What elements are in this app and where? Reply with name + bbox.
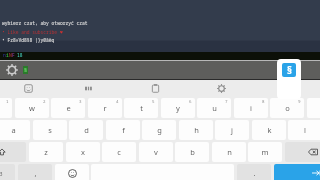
staticText: c bbox=[117, 147, 121, 157]
staticText: . bbox=[253, 168, 256, 178]
button[interactable]: y bbox=[161, 98, 195, 118]
button[interactable]: Stickers bbox=[0, 80, 57, 96]
staticText: w bbox=[29, 103, 35, 113]
button[interactable]: a bbox=[0, 120, 30, 140]
button[interactable]: r bbox=[88, 98, 122, 118]
button[interactable]: c bbox=[102, 142, 136, 162]
staticText: e bbox=[66, 103, 71, 113]
button[interactable]: x bbox=[66, 142, 100, 162]
button[interactable]: h bbox=[179, 120, 213, 140]
staticText: y bbox=[176, 103, 180, 113]
staticText: x bbox=[81, 147, 85, 157]
button[interactable]: t bbox=[124, 98, 158, 118]
staticText: d bbox=[84, 125, 89, 135]
staticText: 18 bbox=[17, 52, 23, 58]
staticText: N bbox=[9, 52, 12, 58]
button[interactable]: v bbox=[139, 142, 173, 162]
button[interactable]: Chat settings bbox=[0, 60, 320, 80]
button[interactable]: w bbox=[15, 98, 49, 118]
staticText: s bbox=[48, 125, 52, 135]
staticText: g bbox=[157, 125, 162, 135]
staticText: u bbox=[212, 103, 217, 113]
staticText: • Like and subscribe ♥ bbox=[2, 29, 63, 35]
staticText: ?123 bbox=[0, 170, 3, 177]
button[interactable]: o bbox=[270, 98, 304, 118]
staticText: 9 bbox=[298, 99, 301, 105]
button[interactable]: s bbox=[33, 120, 67, 140]
button[interactable]: Enter bbox=[274, 164, 320, 180]
button[interactable]: . bbox=[237, 164, 271, 180]
staticText: l bbox=[304, 125, 306, 135]
button[interactable]: b bbox=[175, 142, 209, 162]
staticText: b bbox=[190, 147, 195, 157]
button[interactable]: Chat settings bbox=[6, 64, 18, 76]
staticText: n bbox=[227, 147, 232, 157]
staticText: F bbox=[12, 52, 15, 58]
staticText: v bbox=[154, 147, 158, 157]
staticText: 5 bbox=[152, 99, 155, 105]
button[interactable]: j bbox=[215, 120, 249, 140]
staticText: § bbox=[287, 63, 292, 77]
button[interactable]: Emoji bbox=[55, 164, 89, 180]
staticText: 6 bbox=[189, 99, 192, 105]
button[interactable]: l bbox=[288, 120, 320, 140]
button[interactable]: m bbox=[248, 142, 282, 162]
staticText: 4 bbox=[116, 99, 119, 105]
staticText: h bbox=[194, 125, 199, 135]
staticText: m bbox=[261, 147, 269, 157]
staticText: • Fz8»Vd8§8 |}y0âèq bbox=[2, 37, 55, 43]
button[interactable]: , bbox=[18, 164, 52, 180]
button[interactable]: q bbox=[0, 98, 12, 118]
staticText: t bbox=[140, 103, 143, 113]
button[interactable]: Clipboard bbox=[122, 80, 188, 96]
staticText: j bbox=[231, 125, 233, 135]
button[interactable]: Symbols bbox=[0, 164, 15, 180]
button[interactable]: e bbox=[51, 98, 85, 118]
staticText: wybierz czat, aby otworzyć czat bbox=[2, 20, 88, 26]
staticText: 1 bbox=[6, 99, 9, 105]
button[interactable]: z bbox=[29, 142, 63, 162]
staticText: i bbox=[6, 52, 9, 58]
staticText: i bbox=[250, 103, 252, 113]
staticText: a bbox=[11, 125, 16, 135]
staticText: 7 bbox=[225, 99, 228, 105]
button[interactable]: Themes bbox=[254, 80, 320, 96]
button[interactable]: Backspace bbox=[285, 142, 320, 162]
button[interactable]: GIF bbox=[57, 80, 122, 96]
button[interactable]: i bbox=[234, 98, 268, 118]
button[interactable]: k bbox=[252, 120, 286, 140]
staticText: § bbox=[24, 67, 28, 74]
staticText: n bbox=[3, 52, 6, 58]
button[interactable]: g bbox=[142, 120, 176, 140]
button[interactable]: d bbox=[69, 120, 103, 140]
staticText: k bbox=[267, 125, 272, 135]
button[interactable]: Section sign key bbox=[277, 59, 301, 99]
button[interactable]: Shift bbox=[0, 142, 26, 162]
button[interactable]: n bbox=[212, 142, 246, 162]
staticText: 3 bbox=[79, 99, 82, 105]
staticText: , bbox=[34, 168, 37, 178]
staticText: 8 bbox=[262, 99, 265, 105]
button[interactable]: f bbox=[106, 120, 140, 140]
staticText: o bbox=[285, 103, 290, 113]
staticText: r bbox=[103, 103, 107, 113]
staticText: z bbox=[44, 147, 48, 157]
staticText: 2 bbox=[43, 99, 46, 105]
staticText: f bbox=[122, 125, 125, 135]
button[interactable]: u bbox=[197, 98, 231, 118]
button[interactable]: Settings bbox=[188, 80, 254, 96]
